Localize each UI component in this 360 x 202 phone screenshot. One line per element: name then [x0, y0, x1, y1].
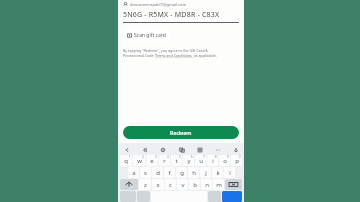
staticText: e	[150, 157, 154, 165]
staticText: Redeem	[170, 129, 192, 136]
button[interactable]: c	[165, 179, 176, 190]
staticText: y	[187, 157, 191, 165]
button[interactable]: a	[128, 167, 139, 178]
staticText: j	[205, 169, 207, 177]
staticText: u	[199, 157, 203, 165]
button[interactable]: o	[219, 155, 230, 166]
button[interactable]: v	[177, 179, 188, 190]
button[interactable]: More options	[213, 145, 222, 154]
staticText: v	[181, 181, 185, 189]
staticText: f	[168, 169, 171, 177]
button[interactable]: 5N6G - R5MX - MD8R - C83X	[123, 10, 239, 23]
staticText: 5	[179, 155, 181, 159]
staticText: 1	[129, 155, 131, 159]
staticText: x	[156, 181, 160, 189]
button[interactable]: Terms and Conditions	[155, 53, 192, 58]
staticText: h	[192, 169, 196, 177]
button[interactable]: q	[120, 155, 132, 166]
button[interactable]: r	[159, 155, 170, 166]
button[interactable]: w	[133, 155, 145, 166]
staticText: o	[223, 157, 227, 165]
staticText: Promotional Code	[123, 53, 155, 58]
button[interactable]: Enter	[222, 191, 242, 202]
button[interactable]: f	[164, 167, 175, 178]
button[interactable]: x	[152, 179, 164, 190]
button[interactable]: Voice input	[231, 145, 240, 154]
button[interactable]: n	[201, 179, 212, 190]
staticText: d	[156, 169, 160, 177]
button[interactable]: Stickers	[140, 145, 149, 154]
staticText: 8	[215, 155, 217, 159]
button[interactable]: m	[213, 179, 224, 190]
staticText: 5N6G - R5MX - MD8R - C83X	[123, 10, 220, 20]
staticText: 0	[239, 155, 241, 159]
button[interactable]: Translate	[177, 145, 186, 154]
staticText: a	[132, 169, 136, 177]
button[interactable]: u	[195, 155, 206, 166]
button[interactable]: j	[200, 167, 211, 178]
staticText: i	[212, 157, 214, 165]
button[interactable]: Account	[123, 2, 239, 7]
button[interactable]: l	[224, 167, 235, 178]
staticText: p	[235, 157, 239, 165]
other: Account	[123, 2, 128, 7]
button[interactable]: e	[146, 155, 158, 166]
button[interactable]: d	[152, 167, 163, 178]
button[interactable]: h	[188, 167, 199, 178]
staticText: n	[205, 181, 209, 189]
staticText: l	[229, 169, 231, 177]
staticText: 6	[191, 155, 193, 159]
staticText: 9	[227, 155, 229, 159]
staticText: c	[169, 181, 172, 189]
staticText: b	[193, 181, 197, 189]
staticText: w	[137, 157, 142, 165]
staticText: z	[144, 181, 147, 189]
staticText: t	[175, 157, 178, 165]
button[interactable]: Redeem	[123, 126, 239, 139]
staticText: m	[216, 181, 222, 189]
staticText: dinusmeerapatil7@gmail.com	[130, 2, 187, 7]
staticText: g	[180, 169, 184, 177]
button[interactable]: Settings	[158, 145, 167, 154]
button[interactable]: b	[189, 179, 200, 190]
staticText: 2	[142, 155, 144, 159]
staticText: , as applicable.	[192, 53, 217, 58]
staticText: k	[216, 169, 220, 177]
button[interactable]: Scan gift card	[123, 29, 170, 42]
button[interactable]: g	[176, 167, 187, 178]
button[interactable]: s	[140, 167, 151, 178]
staticText: 3	[155, 155, 157, 159]
staticText: q	[124, 157, 128, 165]
button[interactable]: p	[231, 155, 242, 166]
button[interactable]: t	[171, 155, 182, 166]
button[interactable]: Backspace	[225, 179, 242, 190]
button[interactable]: i	[207, 155, 218, 166]
button[interactable]: Back	[122, 145, 131, 154]
staticText: 7	[203, 155, 205, 159]
staticText: s	[144, 169, 147, 177]
button[interactable]: Shift	[120, 179, 138, 190]
staticText: Scan gift card	[134, 32, 166, 39]
staticText: By tapping "Redeem", you agree to the Gi…	[123, 48, 208, 53]
staticText: r	[163, 157, 166, 165]
button[interactable]: k	[212, 167, 223, 178]
button[interactable]: y	[183, 155, 194, 166]
staticText: 4	[167, 155, 169, 159]
button[interactable]: Clipboard	[195, 145, 204, 154]
button[interactable]: z	[139, 179, 151, 190]
